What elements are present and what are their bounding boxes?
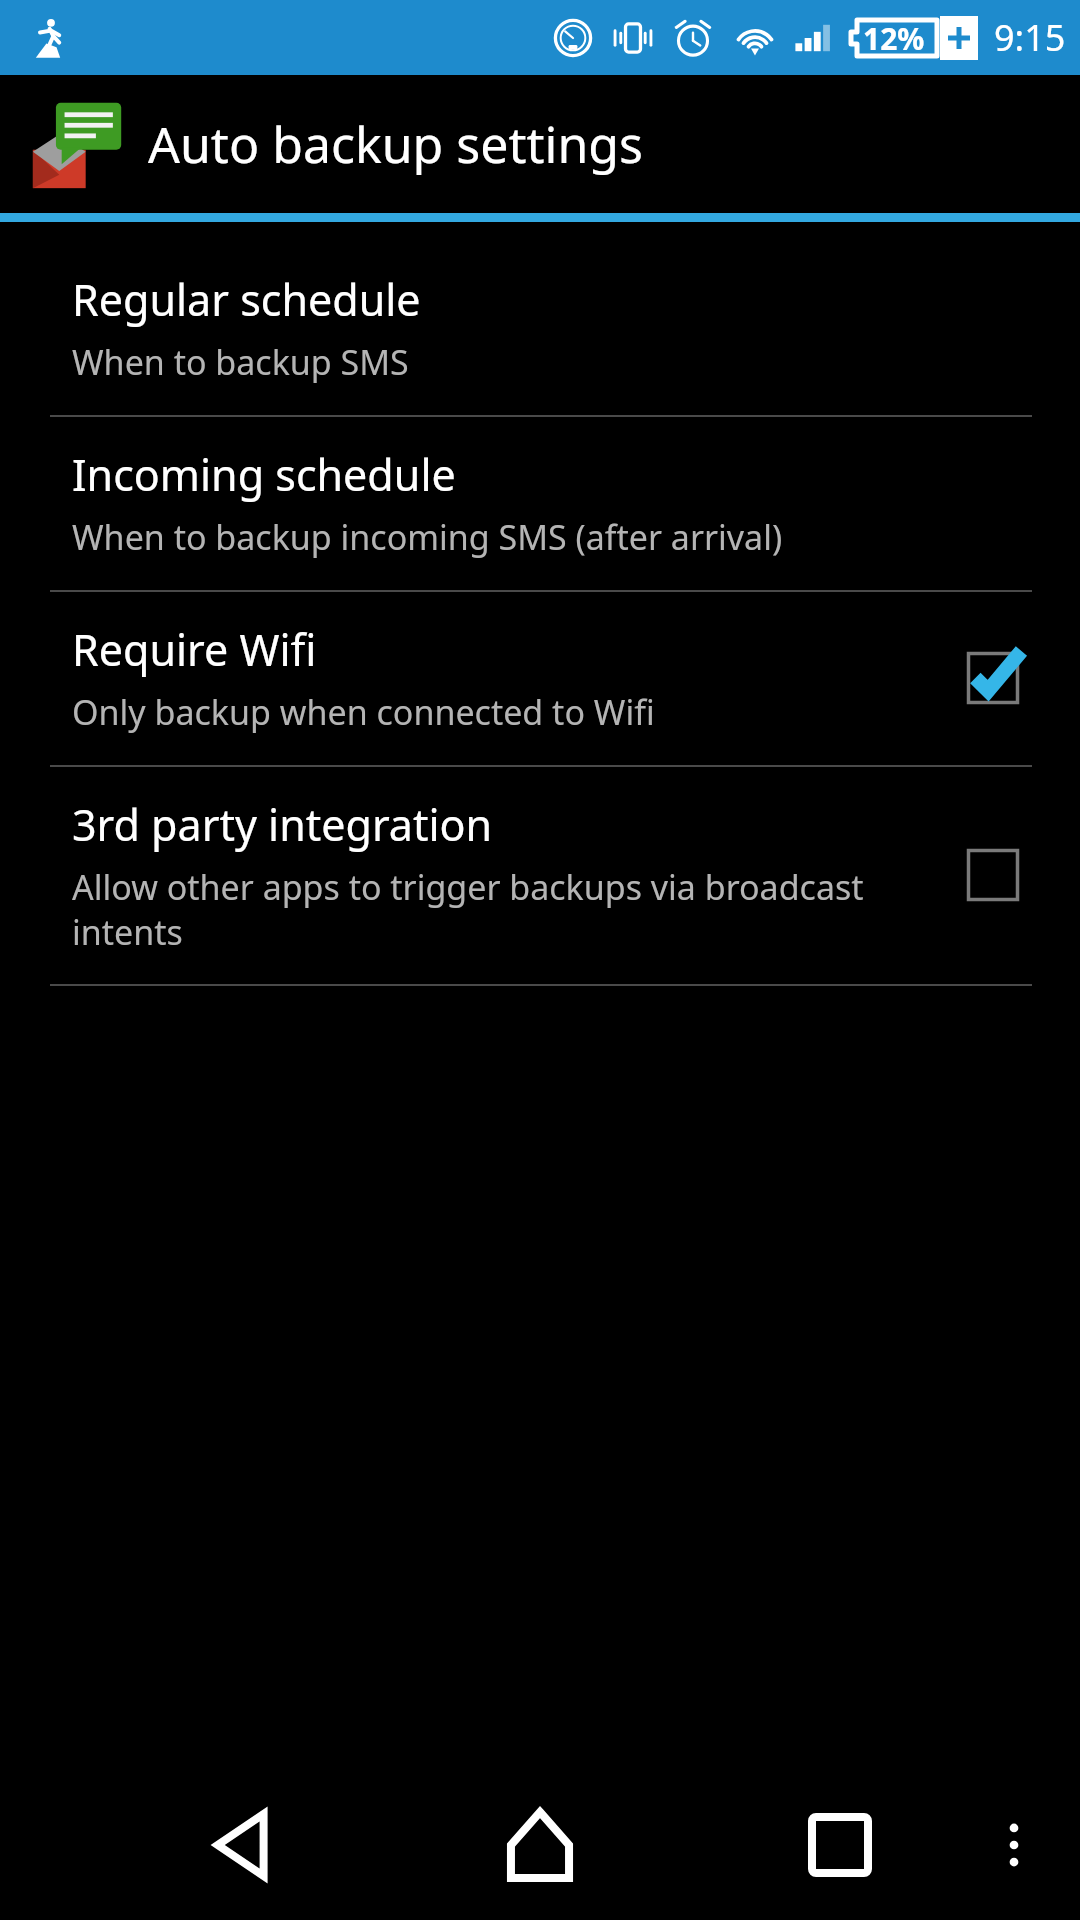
staticText: Require Wifi	[72, 620, 317, 679]
staticText: Allow other apps to trigger backups via …	[72, 864, 932, 954]
button[interactable]: Recent apps	[785, 1790, 895, 1900]
staticText: Only backup when connected to Wifi	[72, 689, 655, 735]
staticText: 3rd party integration	[72, 795, 493, 854]
button[interactable]: Checked	[956, 641, 1030, 715]
button[interactable]: Home	[485, 1790, 595, 1900]
button[interactable]: More options	[966, 1797, 1062, 1893]
button[interactable]: Regular schedule	[0, 242, 1080, 415]
staticText: Incoming schedule	[72, 445, 456, 504]
staticText: Auto backup settings	[148, 110, 644, 178]
staticText: Regular schedule	[72, 270, 421, 329]
button[interactable]: Unchecked	[956, 838, 1030, 912]
button[interactable]: Incoming schedule	[0, 417, 1080, 590]
staticText: When to backup incoming SMS (after arriv…	[72, 514, 783, 560]
staticText: When to backup SMS	[72, 339, 409, 385]
staticText: 12%	[863, 18, 925, 59]
button[interactable]: Require Wifi	[0, 592, 1080, 765]
button[interactable]: Back	[190, 1790, 300, 1900]
staticText: 9:15	[994, 13, 1066, 62]
button[interactable]: 3rd party integration	[0, 767, 1080, 984]
